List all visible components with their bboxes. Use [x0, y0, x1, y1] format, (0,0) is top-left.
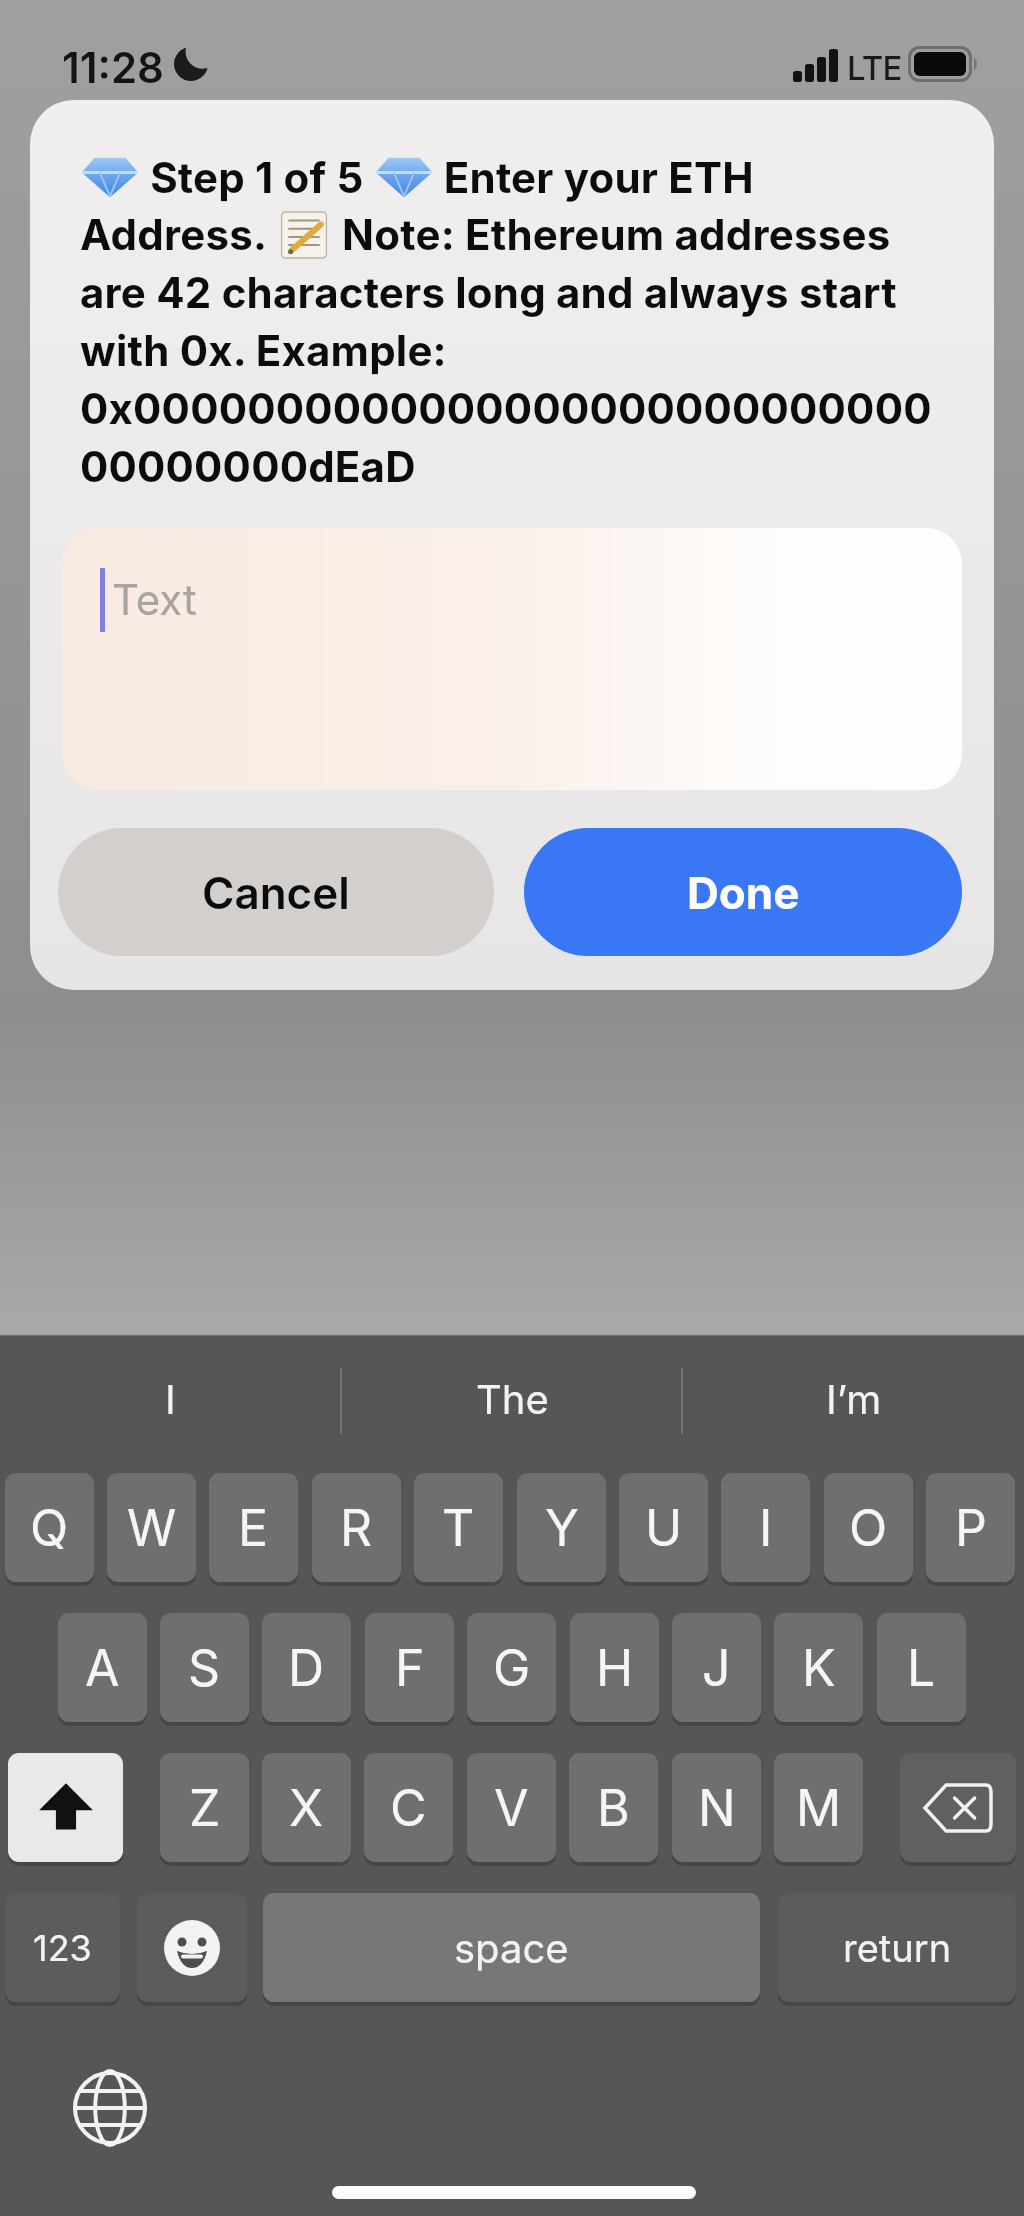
button[interactable]: D	[262, 1613, 351, 1723]
staticText: 11:28	[62, 42, 164, 93]
staticText: X	[289, 1778, 324, 1838]
button[interactable]: space	[263, 1893, 760, 2003]
staticText: B	[597, 1778, 630, 1838]
staticText: Z	[189, 1778, 221, 1838]
button[interactable]: Done	[524, 828, 962, 956]
button[interactable]: J	[672, 1613, 761, 1723]
staticText: space	[454, 1924, 569, 1972]
button[interactable]: L	[877, 1613, 966, 1723]
staticText: Cancel	[202, 866, 350, 919]
button[interactable]: H	[570, 1613, 659, 1723]
staticText: S	[188, 1638, 221, 1698]
staticText: M	[796, 1778, 842, 1838]
button[interactable]: F	[365, 1613, 454, 1723]
button[interactable]: U	[619, 1473, 708, 1583]
button[interactable]: I	[721, 1473, 810, 1583]
button[interactable]: 123	[5, 1893, 120, 2003]
button[interactable]: C	[364, 1753, 453, 1863]
button[interactable]: V	[467, 1753, 556, 1863]
button[interactable]: return	[778, 1893, 1016, 2003]
button[interactable]: N	[672, 1753, 761, 1863]
button[interactable]	[900, 1753, 1016, 1863]
button[interactable]: O	[824, 1473, 913, 1583]
button[interactable]: E	[209, 1473, 298, 1583]
button[interactable]: A	[58, 1613, 147, 1723]
staticText: P	[955, 1498, 987, 1558]
button[interactable]: T	[414, 1473, 503, 1583]
staticText: H	[596, 1638, 634, 1698]
button[interactable]: Text	[62, 528, 962, 790]
button[interactable]: Y	[517, 1473, 606, 1583]
staticText: L	[907, 1638, 936, 1698]
staticText: I	[759, 1498, 773, 1558]
staticText: T	[442, 1498, 475, 1558]
staticText: W	[127, 1498, 177, 1558]
staticText: I’m	[826, 1375, 882, 1423]
staticText: 123	[33, 1926, 92, 1970]
staticText: R	[340, 1498, 373, 1558]
button[interactable]	[8, 1753, 123, 1863]
staticText: K	[802, 1638, 836, 1698]
button[interactable]: G	[467, 1613, 556, 1723]
button[interactable]	[62, 2060, 158, 2156]
button[interactable]: Z	[160, 1753, 249, 1863]
button[interactable]	[137, 1893, 247, 2003]
staticText: Q	[30, 1498, 69, 1558]
staticText: I	[165, 1375, 176, 1423]
button[interactable]: P	[926, 1473, 1015, 1583]
staticText: J	[702, 1638, 731, 1698]
button[interactable]: W	[107, 1473, 196, 1583]
button[interactable]: The	[342, 1336, 682, 1462]
staticText: O	[849, 1498, 888, 1558]
staticText: G	[493, 1638, 531, 1698]
staticText: Text	[112, 574, 197, 625]
staticText: F	[395, 1638, 425, 1698]
staticText: Done	[687, 866, 800, 919]
button[interactable]: R	[312, 1473, 401, 1583]
button[interactable]: S	[160, 1613, 249, 1723]
button[interactable]: M	[774, 1753, 863, 1863]
staticText: C	[390, 1778, 427, 1838]
staticText: N	[698, 1778, 736, 1838]
staticText: A	[85, 1638, 120, 1698]
button[interactable]: K	[774, 1613, 863, 1723]
staticText: U	[645, 1498, 683, 1558]
button[interactable]: I’m	[683, 1336, 1024, 1462]
staticText: return	[843, 1925, 952, 1971]
button[interactable]: I	[0, 1336, 341, 1462]
button[interactable]: X	[262, 1753, 351, 1863]
staticText: The	[476, 1375, 549, 1423]
button[interactable]: Cancel	[58, 828, 494, 956]
staticText: E	[238, 1498, 269, 1558]
staticText: V	[494, 1778, 529, 1838]
staticText: g Step 1 of 5 g Enter your ETH Address. …	[80, 152, 970, 493]
staticText: D	[288, 1638, 325, 1698]
staticText: Y	[545, 1498, 579, 1558]
button[interactable]: Q	[5, 1473, 94, 1583]
staticText: LTE	[847, 48, 902, 88]
button[interactable]: B	[569, 1753, 658, 1863]
